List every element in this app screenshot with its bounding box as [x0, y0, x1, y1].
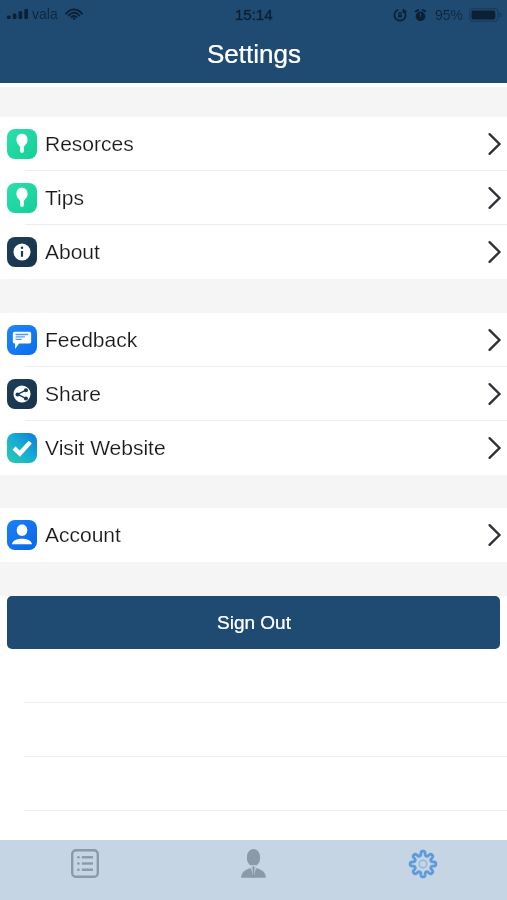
button[interactable]: Tips [0, 171, 507, 225]
button[interactable]: Resorces [0, 117, 507, 171]
staticText: Resorces [45, 132, 134, 155]
staticText: 15:14 [235, 6, 273, 23]
staticText: Visit Website [45, 436, 166, 459]
button[interactable]: Feedback [0, 313, 507, 367]
staticText: 95% [435, 7, 464, 23]
button[interactable]: List [0, 840, 169, 900]
staticText: About [45, 240, 100, 263]
button[interactable]: Share [0, 367, 507, 421]
button[interactable]: About [0, 225, 507, 279]
button[interactable]: Profile [169, 840, 338, 900]
staticText: Feedback [45, 328, 138, 351]
button[interactable]: Visit Website [0, 421, 507, 475]
staticText: Share [45, 382, 102, 405]
staticText: vala [32, 6, 58, 22]
staticText: Account [45, 523, 121, 546]
button[interactable]: Account [0, 508, 507, 562]
button[interactable]: Settings [338, 840, 507, 900]
staticText: Tips [45, 186, 84, 209]
button[interactable]: Sign Out [7, 596, 500, 649]
staticText: Settings [207, 39, 301, 68]
staticText: Sign Out [217, 612, 291, 633]
